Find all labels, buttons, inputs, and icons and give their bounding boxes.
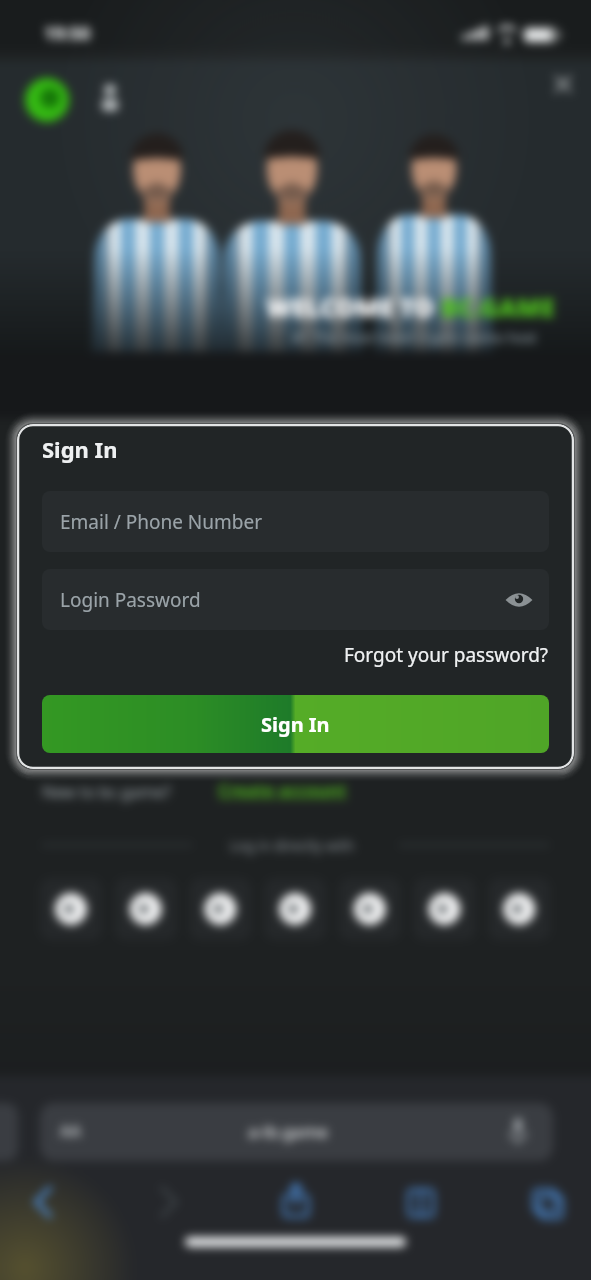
staticText: Email / Phone Number — [60, 509, 263, 535]
button[interactable] — [40, 878, 102, 940]
button[interactable]: Sign In — [42, 695, 549, 753]
staticText: #1 The most loved crypto casino host — [292, 328, 537, 347]
button[interactable]: Email / Phone Number — [42, 491, 549, 552]
button[interactable] — [503, 584, 535, 616]
staticText: Log in directly with — [230, 836, 355, 855]
staticText: Sign In — [42, 434, 118, 464]
button[interactable] — [218, 775, 380, 805]
staticText: a-lb.game — [248, 1120, 328, 1143]
button[interactable] — [189, 878, 251, 940]
staticText: WELCOME TO — [266, 290, 441, 324]
button[interactable] — [264, 878, 326, 940]
staticText: 19:50 — [44, 21, 91, 46]
staticText: AA — [60, 1120, 81, 1142]
button[interactable]: Forgot your password? — [344, 642, 549, 668]
staticText: Login Password — [60, 587, 201, 613]
button[interactable] — [488, 878, 550, 940]
button[interactable] — [26, 78, 70, 122]
button[interactable] — [545, 66, 581, 102]
button[interactable] — [414, 878, 476, 940]
button[interactable] — [115, 878, 177, 940]
staticText: BC.GAME — [441, 290, 555, 324]
staticText: New to bc.game? — [42, 781, 171, 803]
button[interactable] — [339, 878, 401, 940]
button[interactable]: Create account — [218, 779, 347, 802]
button[interactable]: Login Password — [42, 569, 549, 630]
staticText: Sign In — [261, 711, 330, 738]
